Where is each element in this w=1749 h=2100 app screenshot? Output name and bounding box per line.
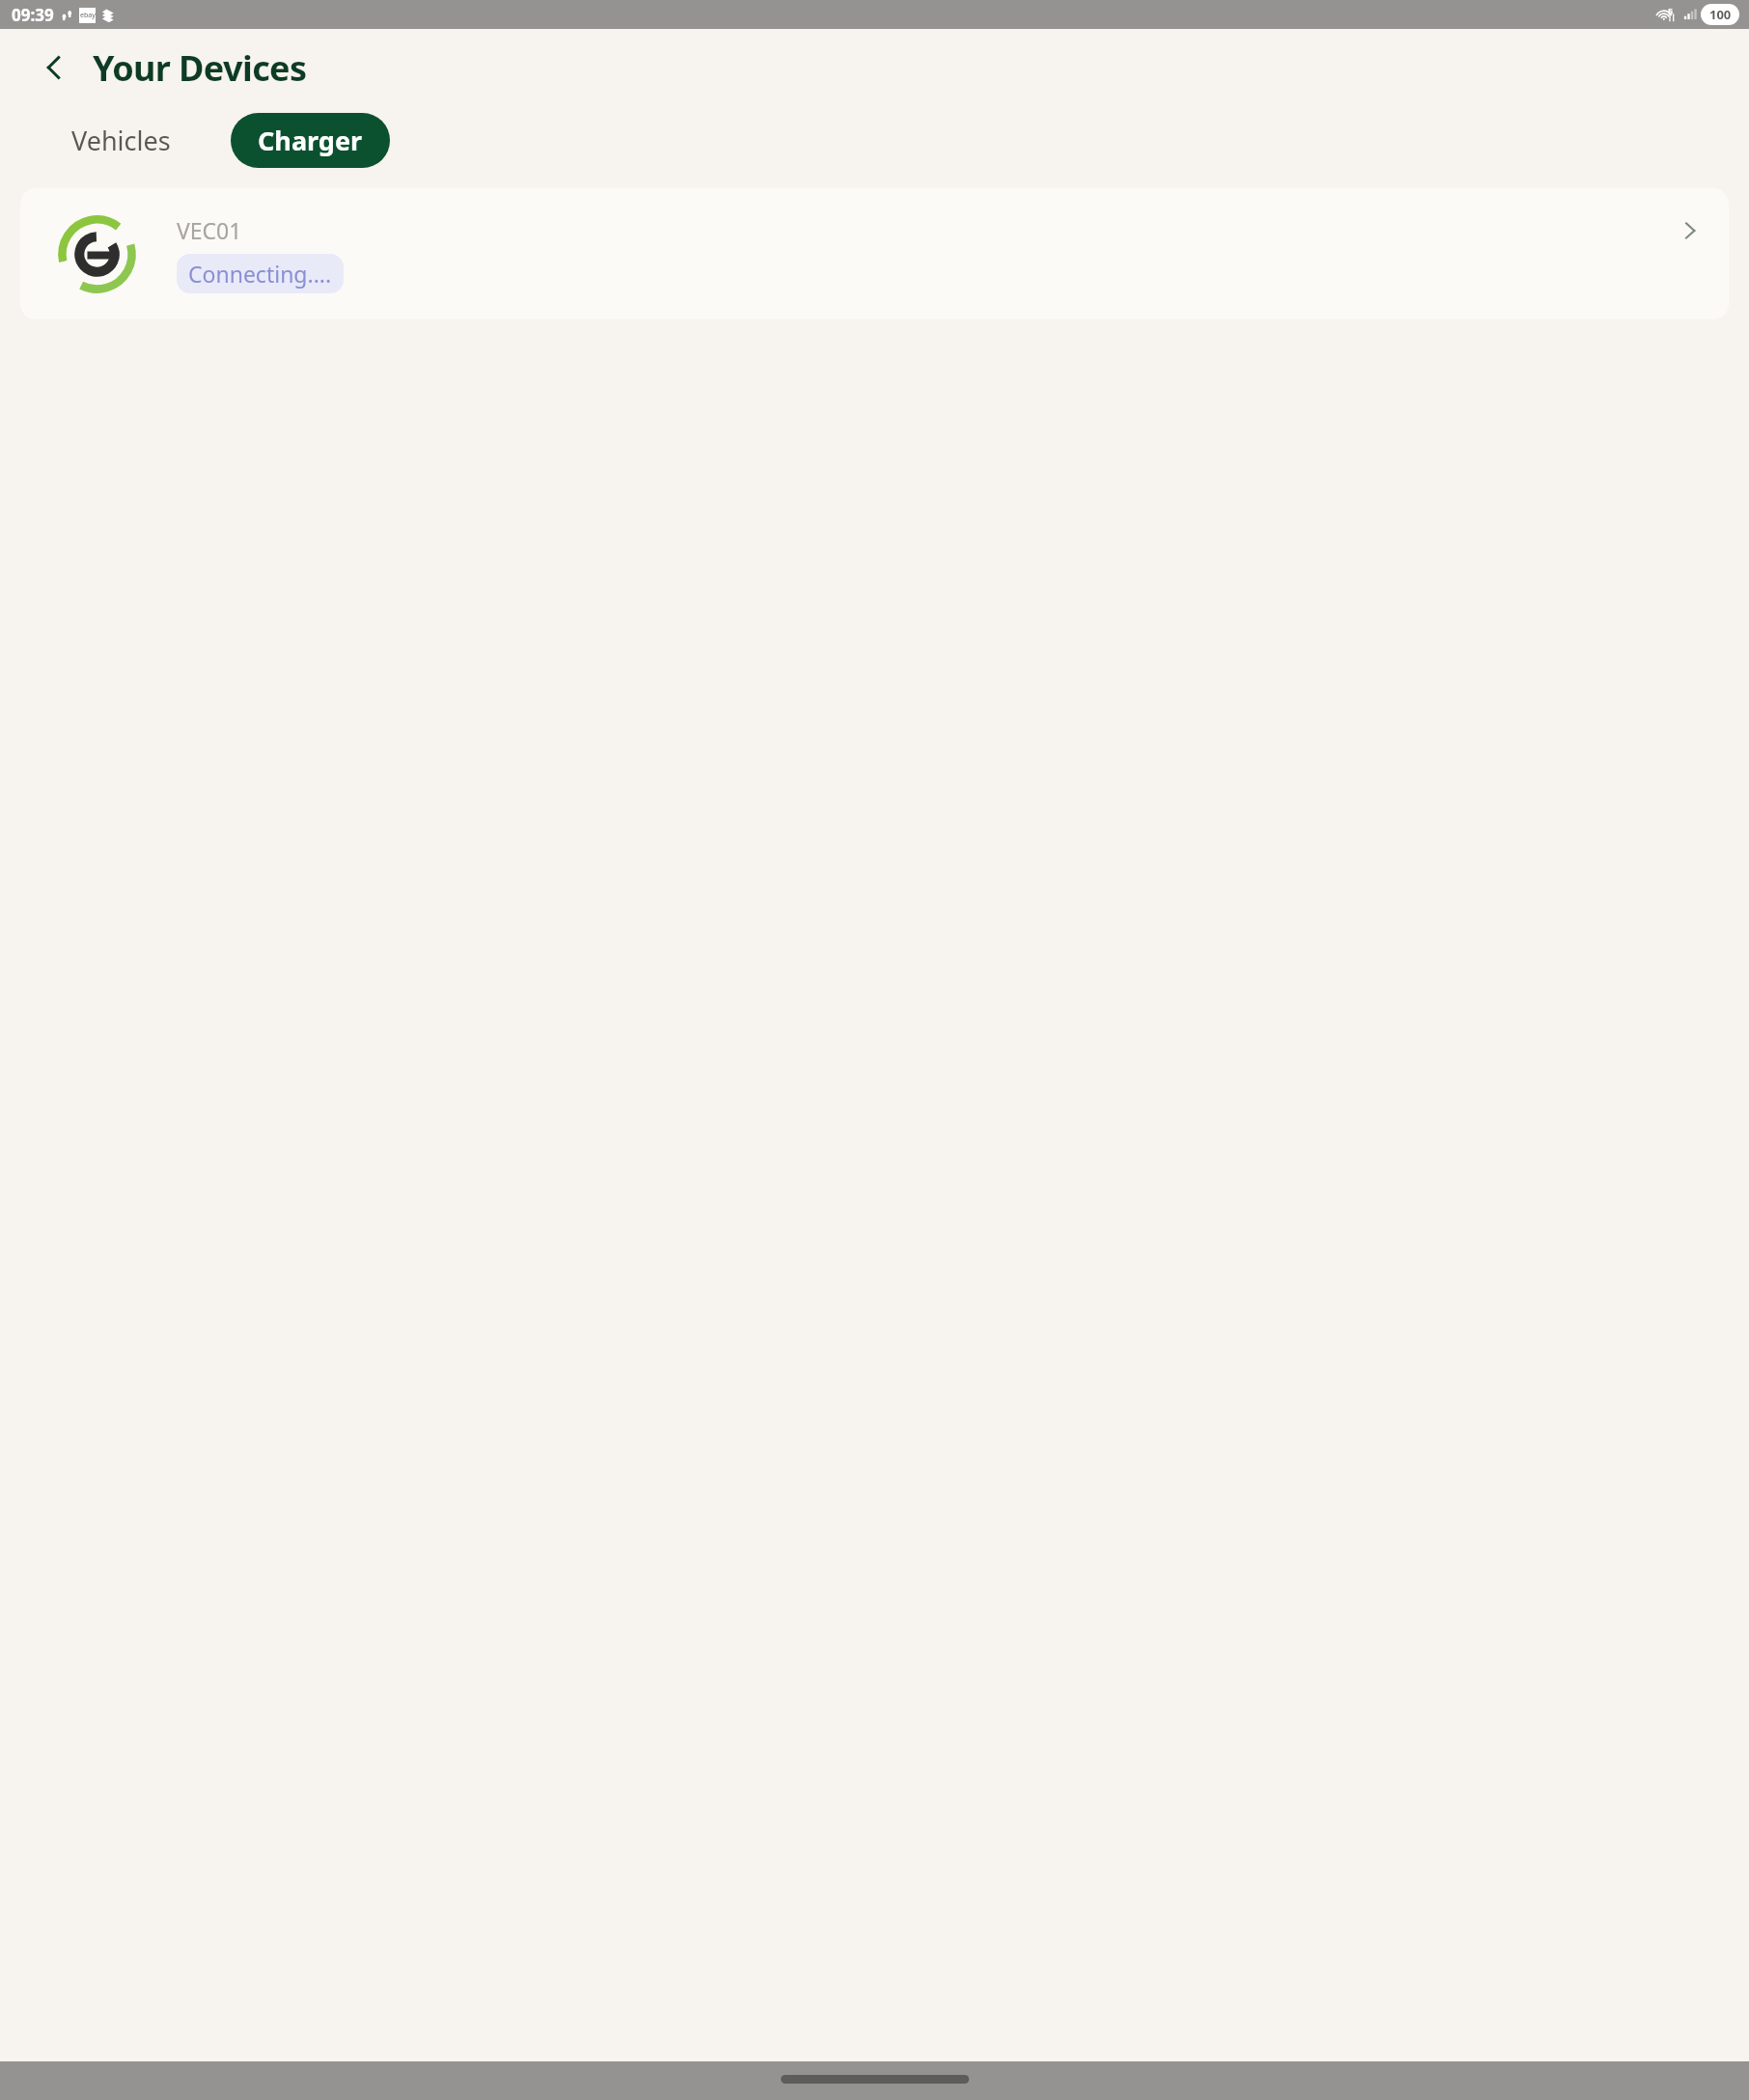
staticText: Connecting.... xyxy=(188,259,332,289)
button[interactable]: Vehicles xyxy=(54,114,188,167)
staticText: 09:39 xyxy=(12,4,54,26)
staticText: 5 xyxy=(1668,5,1674,16)
staticText: Charger xyxy=(258,123,363,158)
button[interactable]: Charger xyxy=(231,113,390,168)
button[interactable]: Back xyxy=(31,44,77,91)
button[interactable]: VEC01 xyxy=(20,188,1729,319)
staticText: VEC01 xyxy=(177,215,242,245)
staticText: ebay xyxy=(80,11,96,20)
staticText: Vehicles xyxy=(71,123,171,158)
staticText: 100 xyxy=(1709,6,1732,23)
staticText: Your Devices xyxy=(93,44,307,92)
